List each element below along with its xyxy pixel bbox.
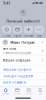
staticText: Ещё [39, 93, 42, 95]
button[interactable]: Платежи [11, 88, 23, 95]
button[interactable]: Ещё [34, 88, 46, 95]
button[interactable]: Карты [13, 26, 22, 38]
staticText: Оплата [24, 34, 33, 38]
staticText: Иван Петров [10, 40, 34, 45]
staticText: Выйти из аккаунта [2, 81, 25, 84]
staticText: Платежи [14, 93, 21, 95]
button[interactable]: Помощь и поддержка [0, 73, 46, 79]
staticText: 9:41 [3, 0, 10, 6]
button[interactable]: Мои счета [0, 47, 46, 55]
button[interactable]: Оплата [24, 26, 33, 38]
staticText: Ещё [37, 34, 41, 38]
button[interactable]: История [23, 88, 34, 95]
button[interactable]: Ещё [35, 26, 44, 38]
staticText: Карты [14, 34, 22, 38]
staticText: Мои счета [2, 47, 16, 50]
staticText: Помощь и поддержка [2, 74, 32, 78]
staticText: Личный кабинет [6, 18, 40, 23]
staticText: Настройки профиля [2, 68, 31, 71]
staticText: История операций [2, 59, 30, 62]
staticText: Главная [2, 93, 9, 95]
button[interactable]: Выйти из аккаунта [0, 79, 46, 86]
staticText: Счета [3, 34, 10, 38]
button[interactable]: Иван Петров [0, 38, 46, 46]
staticText: 3 активных продукта [2, 51, 30, 55]
button[interactable]: История операций [0, 55, 46, 66]
staticText: История [25, 93, 32, 95]
button[interactable]: Главная [0, 88, 11, 95]
button[interactable]: Настройки профиля [0, 67, 46, 73]
button[interactable]: Счета [2, 26, 11, 38]
